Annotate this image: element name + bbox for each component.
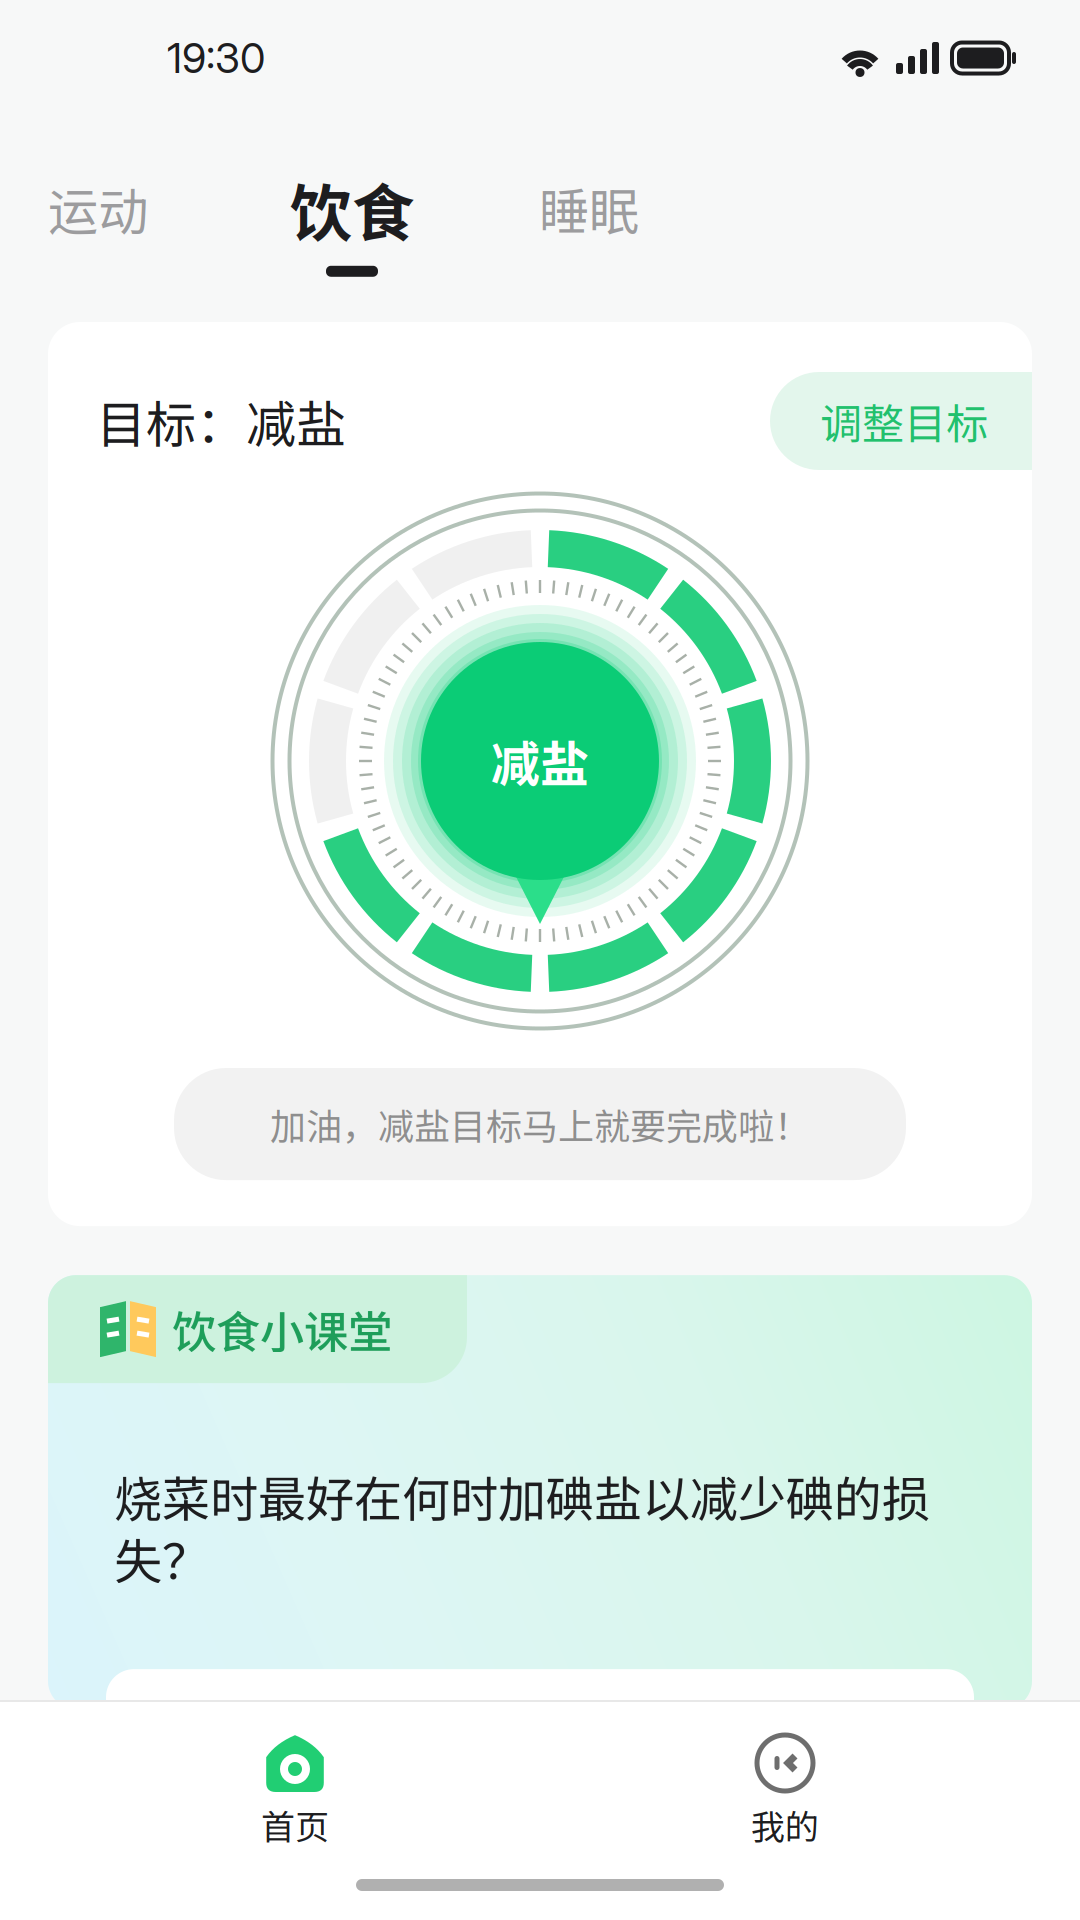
staticText: 首页: [261, 1800, 329, 1849]
staticText: 加油，减盐目标马上就要完成啦！: [270, 1098, 810, 1150]
staticText: 运动: [48, 172, 148, 244]
button[interactable]: 睡眠: [539, 164, 639, 244]
button[interactable]: 加油，减盐目标马上就要完成啦！: [174, 1068, 906, 1180]
button[interactable]: 首页: [170, 1734, 420, 1849]
staticText: 饮食小课堂: [172, 1297, 392, 1361]
button[interactable]: 调整目标: [770, 372, 1032, 470]
staticText: 睡眠: [539, 172, 639, 244]
button[interactable]: 我的: [660, 1734, 910, 1849]
button[interactable]: 饮食: [290, 164, 414, 277]
staticText: 烧菜时最好在何时加碘盐以减少碘的损失？: [114, 1461, 930, 1593]
staticText: 19:30: [167, 33, 265, 83]
staticText: 我的: [751, 1800, 819, 1849]
staticText: 减盐: [491, 725, 589, 796]
staticText: 调整目标: [820, 391, 988, 451]
button[interactable]: 运动: [48, 164, 148, 244]
staticText: 目标：减盐: [96, 385, 346, 457]
staticText: 饮食: [290, 164, 414, 254]
